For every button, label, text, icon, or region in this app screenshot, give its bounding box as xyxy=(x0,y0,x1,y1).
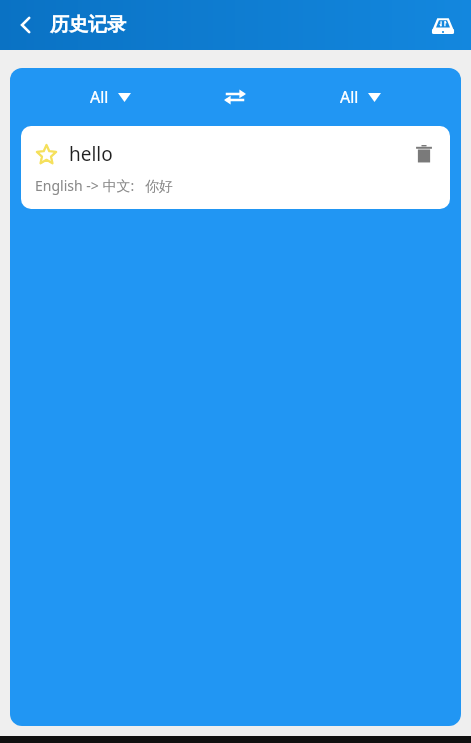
button[interactable]: Storage xyxy=(423,5,463,45)
button[interactable]: All xyxy=(330,80,391,114)
button[interactable]: Back xyxy=(6,5,46,45)
staticText: 历史记录 xyxy=(50,13,126,37)
button[interactable]: Favorite xyxy=(21,126,450,209)
button[interactable]: Swap languages xyxy=(211,73,259,121)
button[interactable]: All xyxy=(80,80,141,114)
staticText: English -> 中文: 你好 xyxy=(35,176,174,195)
staticText: All xyxy=(90,86,109,108)
button[interactable]: Favorite xyxy=(33,141,59,167)
staticText: All xyxy=(340,86,359,108)
button[interactable]: Delete xyxy=(410,140,438,168)
staticText: hello xyxy=(69,141,113,167)
